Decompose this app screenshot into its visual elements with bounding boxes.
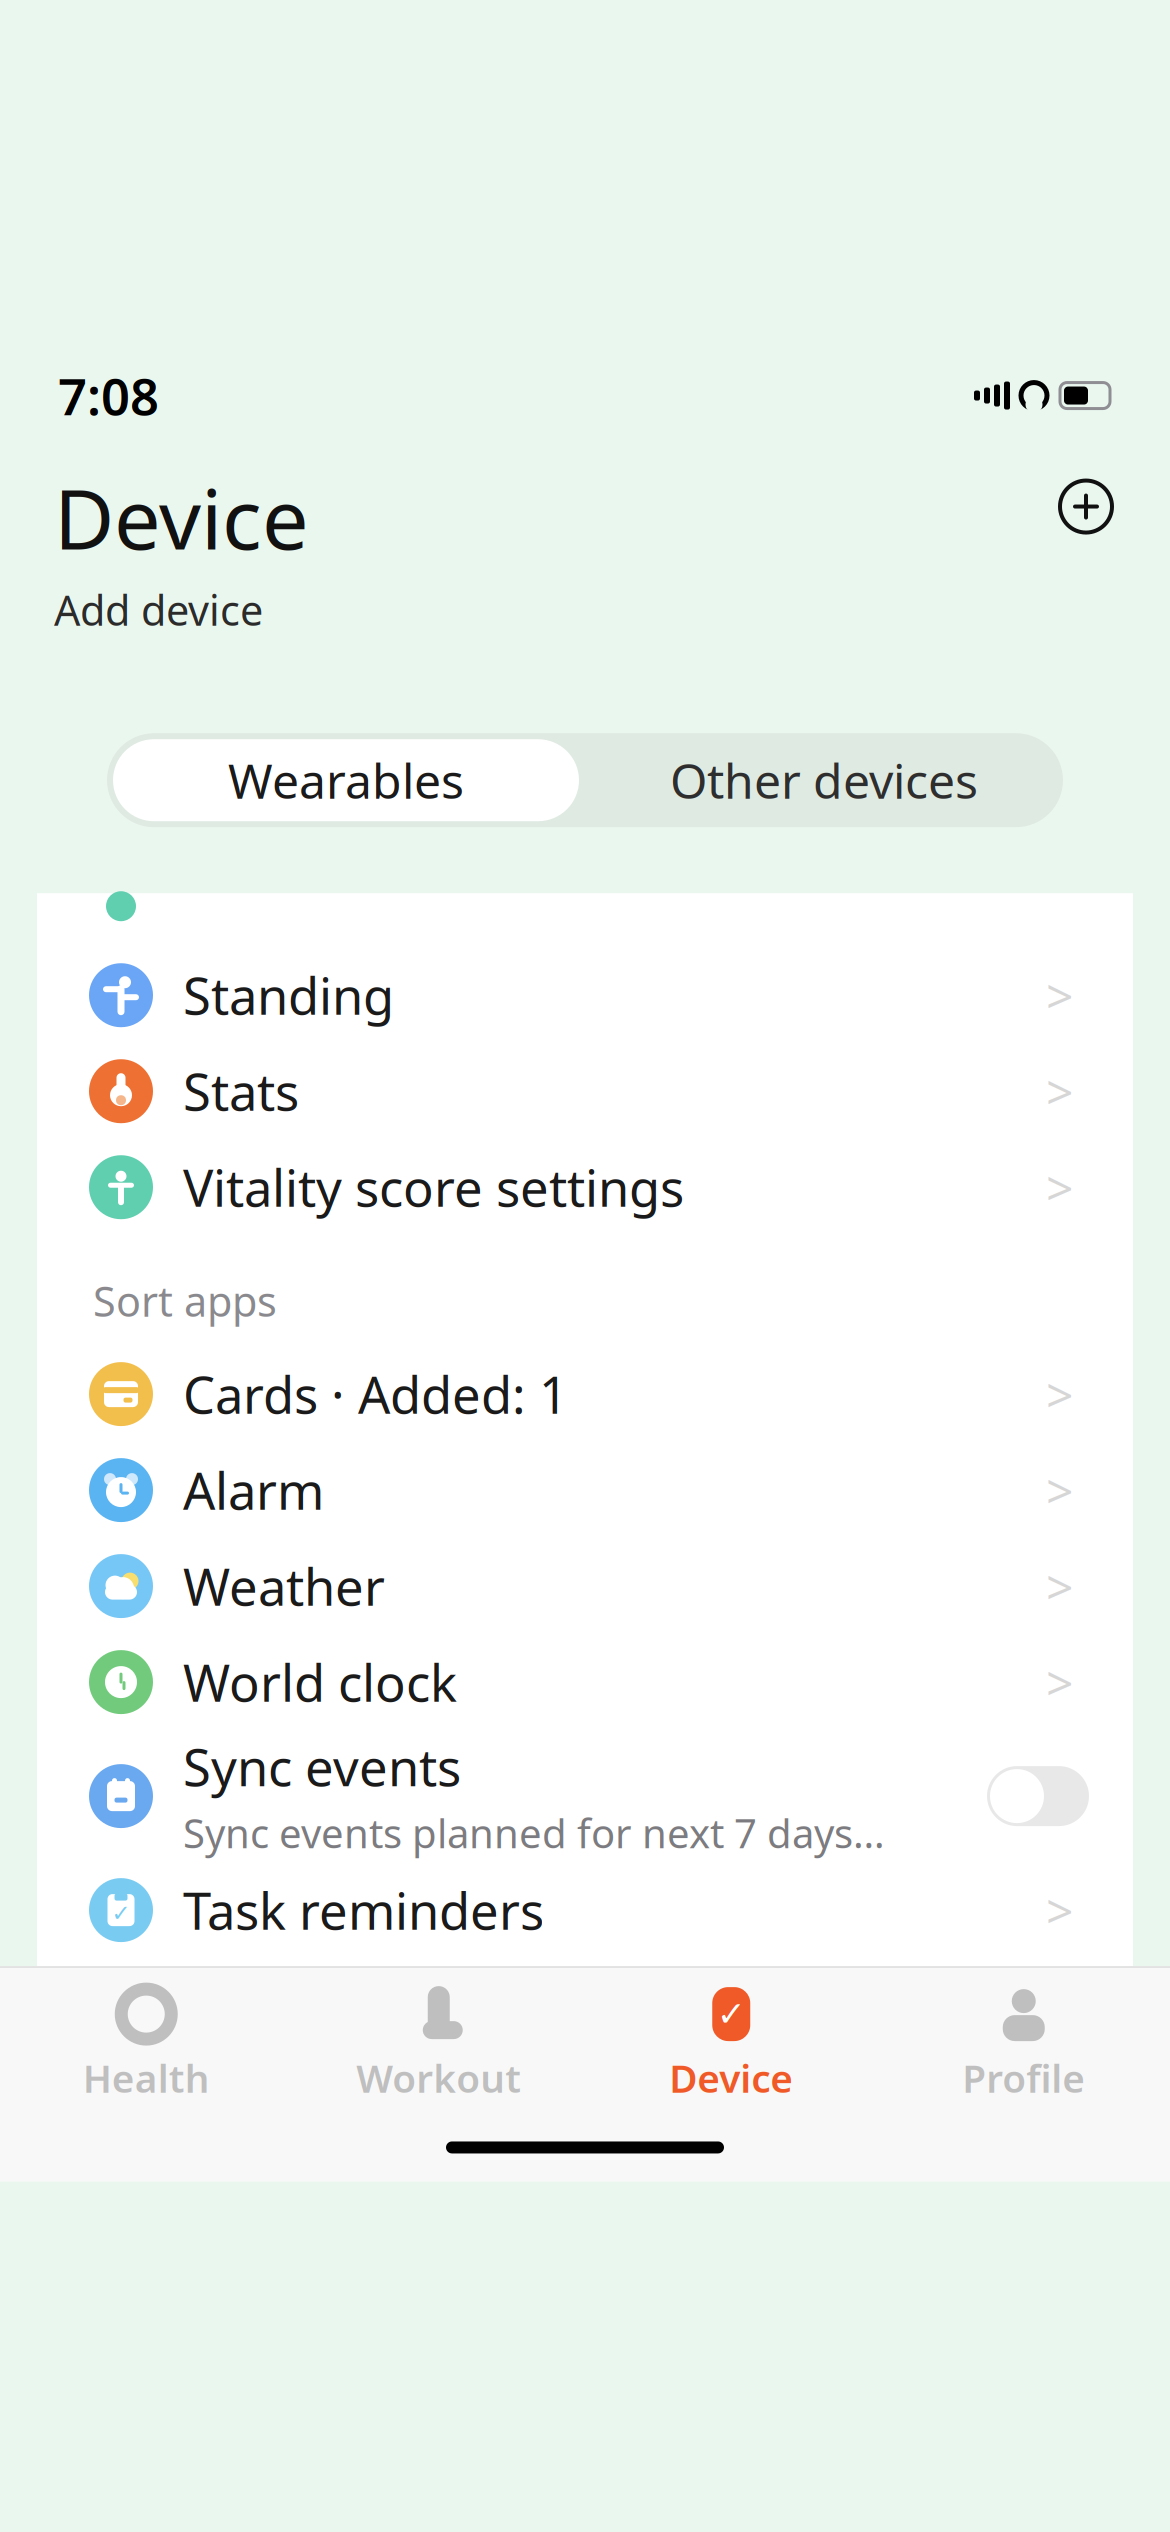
staticText: > (1046, 1155, 1073, 1219)
staticText: Task reminders (183, 1876, 544, 1944)
staticText: Health (83, 2052, 210, 2103)
staticText: Weather (183, 1552, 385, 1620)
button[interactable]: Health (0, 1968, 292, 2113)
button[interactable]: Alarm (37, 1442, 1133, 1538)
staticText: 7:08 (58, 362, 159, 429)
button[interactable]: Wearables (107, 733, 585, 827)
staticText: Profile (962, 2052, 1085, 2103)
staticText: Workout (356, 2052, 521, 2103)
staticText: Standing (183, 962, 394, 1029)
staticText: Stats (183, 1058, 299, 1125)
button[interactable]: Cards · Added: 1 (37, 1346, 1133, 1442)
staticText: ✓ (717, 1994, 746, 2034)
button[interactable]: Weather (37, 1538, 1133, 1634)
button[interactable]: Standing (37, 947, 1133, 1043)
button[interactable]: Other devices (585, 733, 1063, 827)
button[interactable]: Sync events (37, 1730, 1133, 1862)
staticText: > (1046, 963, 1073, 1027)
staticText: > (1046, 1059, 1073, 1123)
staticText: > (1046, 1650, 1073, 1714)
staticText: Vitality score settings (183, 1154, 684, 1221)
button[interactable]: Add device (1056, 462, 1116, 536)
staticText: > (1046, 1458, 1073, 1522)
button[interactable]: Profile (877, 1968, 1170, 2113)
staticText: Add device (54, 582, 263, 637)
staticText: Other devices (670, 748, 978, 812)
staticText: Device (54, 462, 309, 572)
staticText: Sync events planned for next 7 days… (183, 1806, 885, 1859)
button[interactable]: Workout (292, 1968, 585, 2113)
staticText: Sort apps (93, 1273, 277, 1328)
staticText: Device (669, 2052, 793, 2103)
staticText: Wearables (228, 748, 464, 812)
button[interactable]: World clock (37, 1634, 1133, 1730)
staticText: > (1046, 1362, 1073, 1426)
staticText: > (1046, 1554, 1073, 1618)
staticText: World clock (183, 1648, 457, 1716)
staticText: Sync events (183, 1733, 461, 1800)
button[interactable]: Vitality score settings (37, 1139, 1133, 1235)
staticText: Cards · Added: 1 (183, 1360, 568, 1428)
button[interactable]: ✓ (37, 1862, 1133, 1958)
staticText: > (1046, 1878, 1073, 1942)
staticText: Alarm (183, 1456, 324, 1524)
button[interactable]: Stats (37, 1043, 1133, 1139)
button[interactable]: ✓ (585, 1968, 877, 2113)
staticText: ✓ (111, 1900, 130, 1926)
